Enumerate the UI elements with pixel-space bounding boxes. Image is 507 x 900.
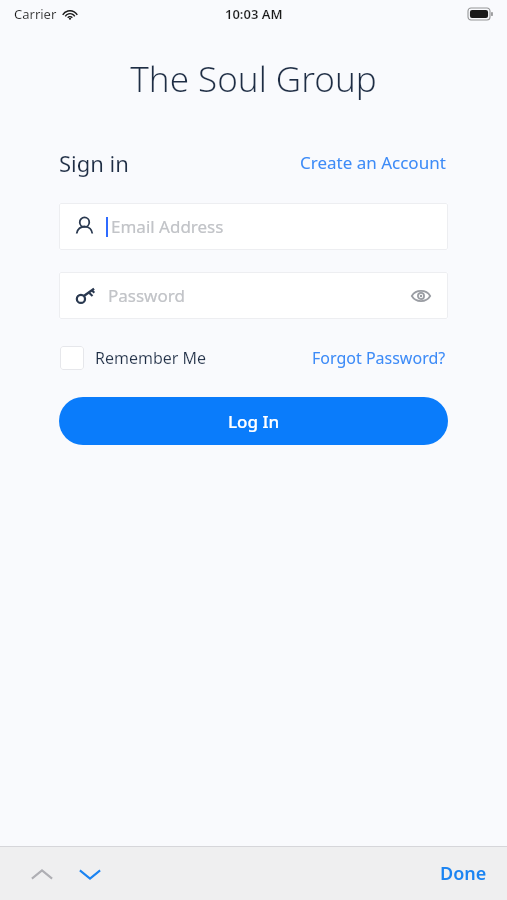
button[interactable]: Email Address bbox=[59, 203, 448, 250]
button[interactable]: Forgot Password? bbox=[310, 343, 448, 373]
staticText: The Soul Group bbox=[0, 55, 507, 103]
staticText: Done bbox=[440, 861, 487, 886]
staticText: Carrier bbox=[14, 5, 57, 23]
staticText: Email Address bbox=[111, 215, 434, 238]
staticText: Sign in bbox=[59, 148, 129, 178]
staticText: Forgot Password? bbox=[312, 347, 446, 369]
staticText: Log In bbox=[228, 410, 280, 433]
staticText: 10:03 AM bbox=[225, 5, 283, 23]
button[interactable]: Create an Account bbox=[298, 147, 448, 178]
button[interactable]: Previous field bbox=[20, 852, 64, 896]
staticText: Create an Account bbox=[300, 151, 446, 174]
staticText: Remember Me bbox=[95, 347, 207, 369]
button[interactable]: Password bbox=[59, 272, 448, 319]
button[interactable]: Done bbox=[434, 853, 493, 894]
button[interactable]: Next field bbox=[68, 852, 112, 896]
button[interactable]: Show password bbox=[408, 286, 434, 306]
staticText: Password bbox=[108, 284, 408, 307]
button[interactable]: Remember Me bbox=[59, 343, 208, 373]
button[interactable]: Log In bbox=[59, 397, 448, 445]
